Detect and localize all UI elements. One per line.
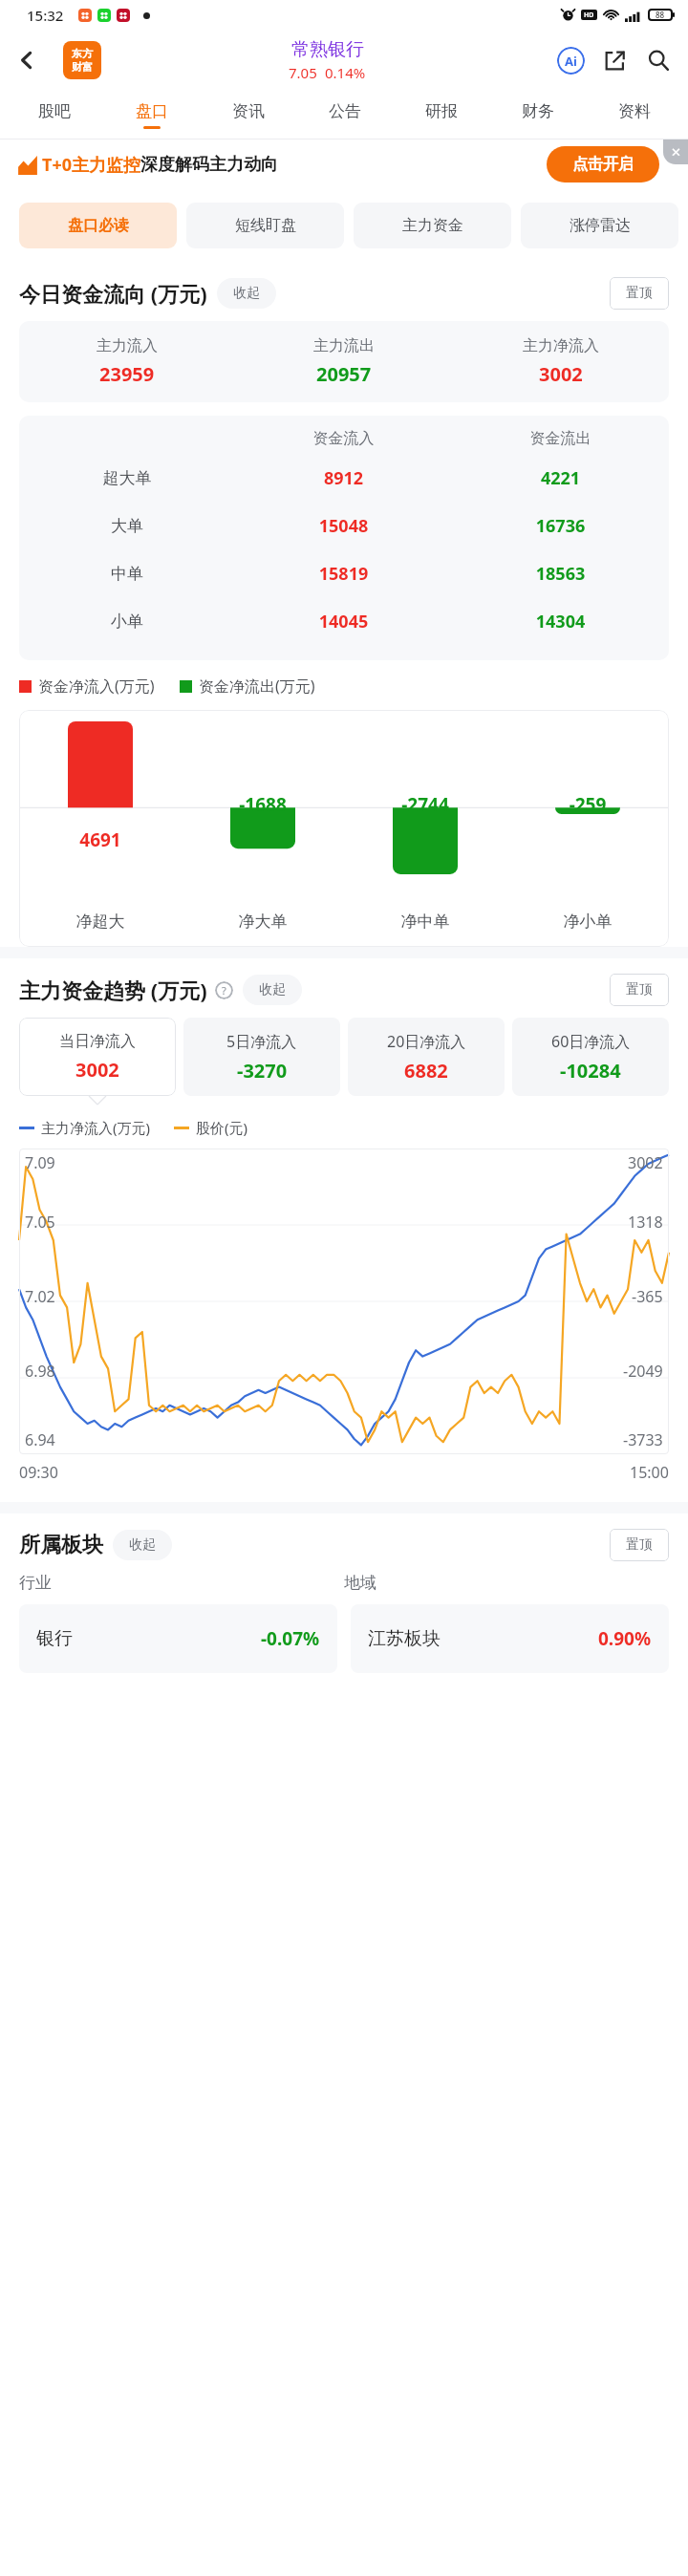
button[interactable]: 置顶 xyxy=(610,974,669,1006)
button[interactable]: 银行 xyxy=(36,1604,320,1673)
staticText: 财富 xyxy=(72,60,93,74)
staticText: 点击开启 xyxy=(572,155,634,174)
staticText: 主力资金 xyxy=(402,216,463,235)
staticText: 0.14% xyxy=(325,63,366,82)
staticText: 4691 xyxy=(19,827,182,852)
staticText: 7.09 xyxy=(25,1152,55,1173)
staticText: 7.05 xyxy=(25,1212,55,1233)
button[interactable]: 研报 xyxy=(393,91,489,139)
staticText: 主力净流入(万元) xyxy=(41,1118,151,1137)
staticText: 资金流出 xyxy=(452,429,669,448)
staticText: 0.90% xyxy=(598,1626,652,1651)
staticText: 短线盯盘 xyxy=(235,216,296,235)
staticText: 3002 xyxy=(628,1152,663,1173)
button[interactable]: East Money xyxy=(63,41,101,79)
button[interactable]: 收起 xyxy=(113,1530,172,1560)
button[interactable]: 盘口必读 xyxy=(19,203,177,248)
staticText: -1688 xyxy=(182,792,344,817)
button[interactable]: Close xyxy=(663,140,688,164)
staticText: 当日净流入 xyxy=(59,1032,136,1051)
button[interactable]: 江苏板块 xyxy=(368,1604,652,1673)
button[interactable]: 资料 xyxy=(586,91,682,139)
button[interactable]: Search xyxy=(640,42,677,78)
button[interactable]: 置顶 xyxy=(610,1529,669,1561)
staticText: 收起 xyxy=(233,285,260,302)
staticText: 资料 xyxy=(618,101,651,121)
staticText: 15:32 xyxy=(27,6,64,25)
button[interactable]: 大单 xyxy=(19,502,669,549)
staticText: 14045 xyxy=(235,610,452,633)
button[interactable]: 股吧 xyxy=(6,91,103,139)
button[interactable]: Help xyxy=(215,981,233,999)
staticText: -2049 xyxy=(623,1361,663,1382)
staticText: ? xyxy=(222,983,226,998)
button[interactable]: 点击开启 xyxy=(547,146,659,182)
button[interactable]: Share xyxy=(596,42,633,78)
staticText: 地域 xyxy=(344,1573,669,1593)
staticText: 15:00 xyxy=(630,1462,669,1483)
staticText: 资讯 xyxy=(232,101,265,121)
staticText: 置顶 xyxy=(626,1536,653,1554)
staticText: 所属板块 xyxy=(19,1532,103,1558)
button[interactable]: 收起 xyxy=(243,975,302,1005)
staticText: 8912 xyxy=(235,466,452,490)
staticText: -3270 xyxy=(237,1058,288,1084)
staticText: 15048 xyxy=(235,514,452,538)
staticText: -10284 xyxy=(560,1058,621,1084)
staticText: 主力流出 xyxy=(313,336,375,355)
button[interactable]: 主力资金 xyxy=(354,203,511,248)
staticText: HD xyxy=(584,11,594,20)
staticText: 资金流入 xyxy=(235,429,452,448)
staticText: 东方 xyxy=(72,47,93,60)
staticText: 公告 xyxy=(329,101,361,121)
button[interactable]: 资讯 xyxy=(200,91,296,139)
button[interactable]: 超大单 xyxy=(19,454,669,502)
staticText: 净超大 xyxy=(19,912,182,932)
staticText: 股吧 xyxy=(38,101,71,121)
staticText: 财务 xyxy=(522,101,554,121)
staticText: 资金净流入(万元) xyxy=(38,676,155,697)
staticText: 20957 xyxy=(316,361,372,387)
staticText: 研报 xyxy=(425,101,458,121)
button[interactable]: 小单 xyxy=(19,597,669,645)
button[interactable]: Back xyxy=(8,41,46,79)
button[interactable]: T+0主力监控 xyxy=(0,140,688,189)
button[interactable]: 中单 xyxy=(19,549,669,597)
staticText: 行业 xyxy=(19,1573,344,1593)
staticText: 盘口必读 xyxy=(68,216,129,235)
staticText: 今日资金流向 (万元) xyxy=(19,279,207,308)
button[interactable]: 7.09 xyxy=(19,1148,669,1454)
staticText: 6882 xyxy=(404,1058,448,1084)
staticText: 银行 xyxy=(36,1627,73,1650)
staticText: 5日净流入 xyxy=(226,1031,297,1052)
staticText: 江苏板块 xyxy=(368,1627,441,1650)
button[interactable]: AI assistant xyxy=(552,42,589,78)
button[interactable]: 收起 xyxy=(217,278,276,309)
staticText: 14304 xyxy=(452,610,669,633)
staticText: 收起 xyxy=(259,981,286,998)
button[interactable]: -1688 xyxy=(19,710,669,947)
staticText: 超大单 xyxy=(19,468,235,488)
staticText: 置顶 xyxy=(626,285,653,302)
button[interactable]: 置顶 xyxy=(610,277,669,310)
staticText: -259 xyxy=(506,792,669,817)
button[interactable]: 当日净流入 xyxy=(19,1018,176,1096)
button[interactable]: 涨停雷达 xyxy=(521,203,678,248)
button[interactable]: 盘口 xyxy=(103,91,200,139)
staticText: 7.05 xyxy=(289,63,317,82)
staticText: 60日净流入 xyxy=(551,1031,631,1052)
staticText: 6.94 xyxy=(25,1429,55,1450)
button[interactable]: 60日净流入 xyxy=(512,1018,669,1096)
staticText: 资金净流出(万元) xyxy=(199,676,315,697)
staticText: 置顶 xyxy=(626,981,653,998)
button[interactable]: 5日净流入 xyxy=(183,1018,340,1096)
staticText: 7.02 xyxy=(25,1286,55,1307)
button[interactable]: 主力流入 xyxy=(19,336,669,387)
staticText: T+0主力监控 xyxy=(42,153,140,177)
button[interactable]: 公告 xyxy=(296,91,393,139)
staticText: 主力流入 xyxy=(97,336,158,355)
staticText: 15819 xyxy=(235,562,452,586)
button[interactable]: 财务 xyxy=(489,91,586,139)
button[interactable]: 短线盯盘 xyxy=(186,203,344,248)
button[interactable]: 20日净流入 xyxy=(348,1018,505,1096)
